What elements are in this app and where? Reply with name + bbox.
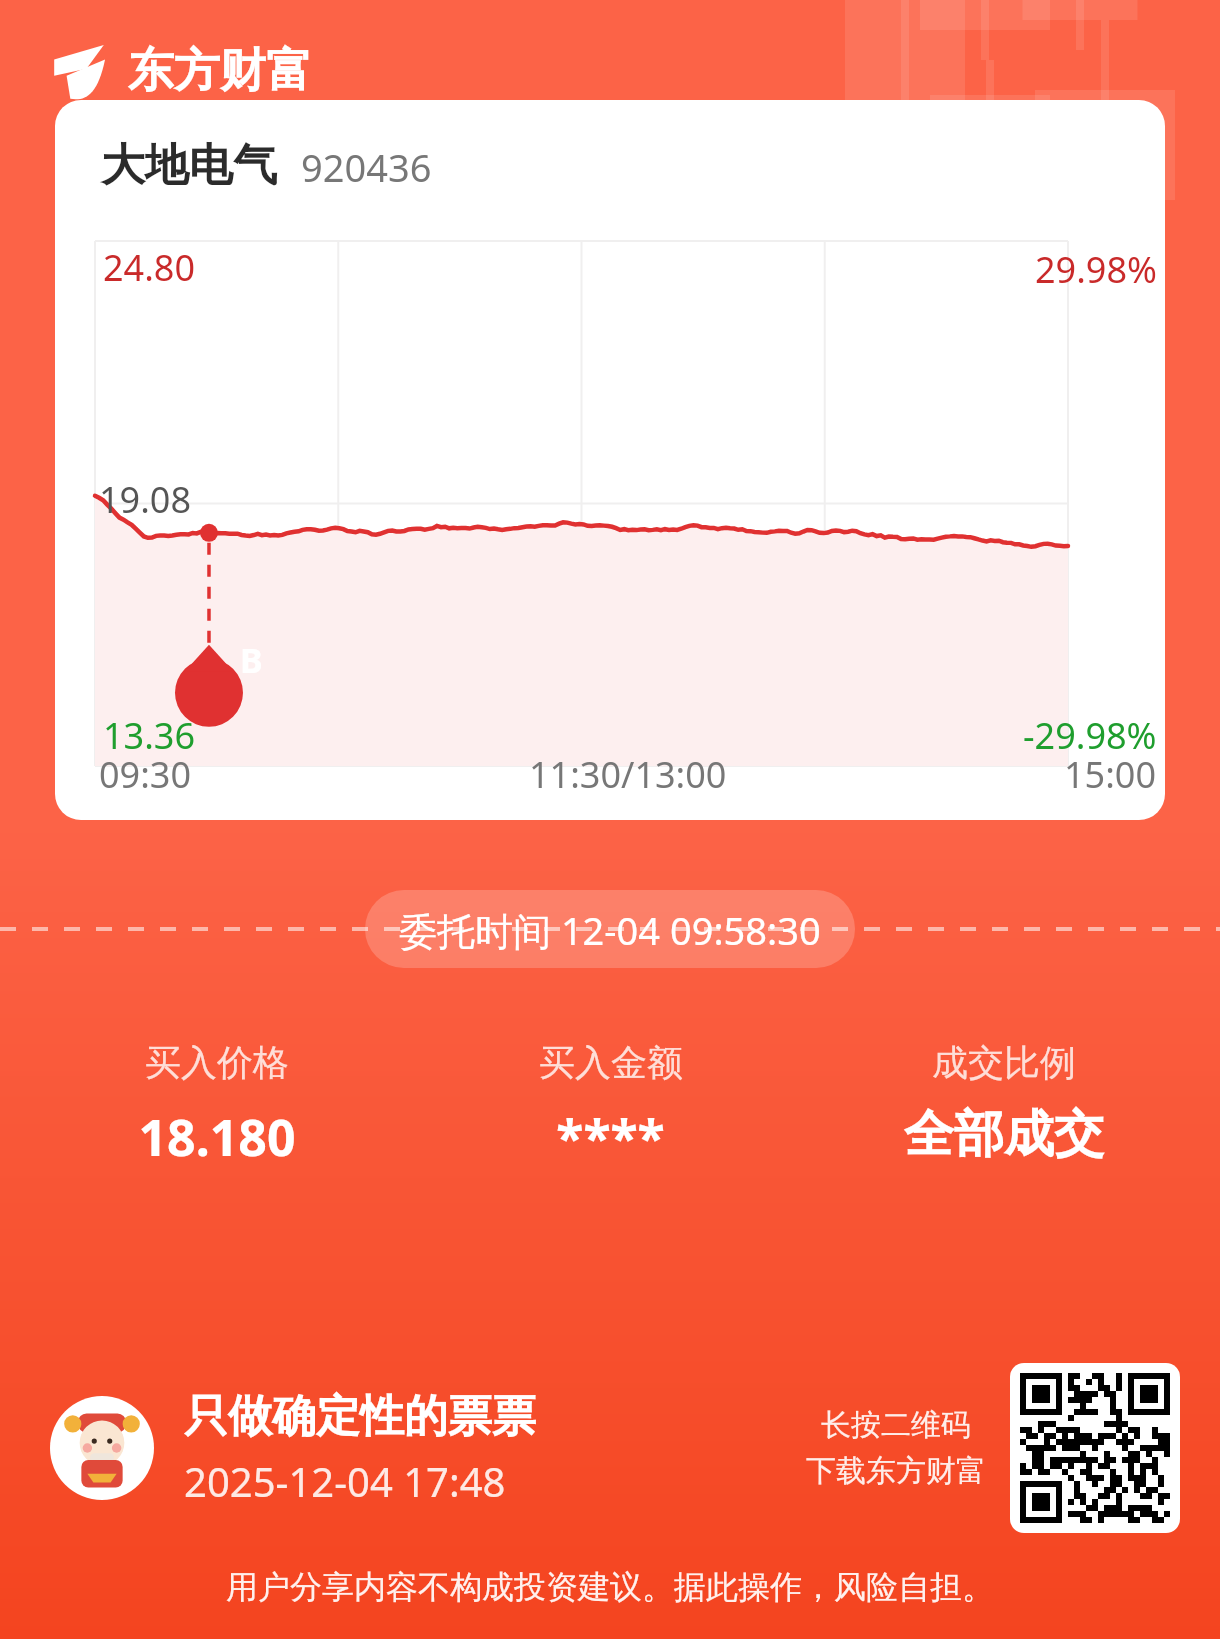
staticText: 2025-12-04 17:48 [184,1454,506,1508]
staticText: 成交比例 [932,1040,1076,1085]
staticText: 委托时间 12-04 09:58:30 [399,904,821,954]
staticText: 大地电气 [101,138,277,193]
button[interactable]: User avatar [50,1396,154,1500]
button[interactable]: QR code [1010,1363,1180,1533]
button[interactable]: 委托时间 12-04 09:58:30 [399,904,821,954]
staticText: 长按二维码 [821,1406,971,1444]
button[interactable]: 大地电气 [55,100,1165,820]
staticText: 买入价格 [145,1040,289,1085]
staticText: 东方财富 [128,42,312,100]
staticText: 13.36 [103,711,196,760]
staticText: 买入金额 [539,1040,683,1085]
staticText: 29.98% [1035,245,1157,294]
staticText: 11:30/13:00 [529,750,727,799]
staticText: 920436 [301,141,432,193]
staticText: 24.80 [103,243,196,292]
staticText: 全部成交 [904,1103,1104,1166]
staticText: **** [556,1103,665,1171]
staticText: -29.98% [1023,711,1157,760]
staticText: 用户分享内容不构成投资建议。据此操作，风险自担。 [0,1567,1220,1607]
staticText: 19.08 [99,475,192,524]
staticText: B [240,637,263,683]
staticText: 15:00 [1064,750,1157,799]
staticText: 下载东方财富 [806,1452,986,1490]
staticText: 18.180 [138,1103,296,1171]
staticText: 只做确定性的票票 [184,1389,536,1444]
staticText: 09:30 [99,750,192,799]
